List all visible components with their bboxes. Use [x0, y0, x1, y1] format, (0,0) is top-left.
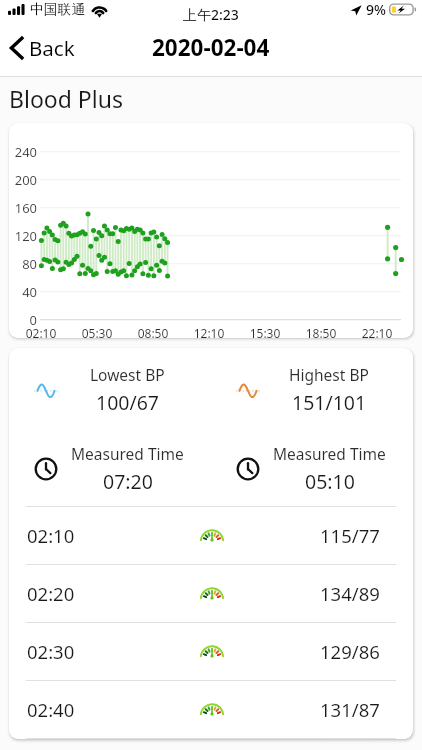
staticText: Back — [29, 34, 75, 62]
staticText: 中国联通 — [30, 1, 86, 18]
button[interactable]: Measured Time — [211, 443, 413, 495]
staticText: Lowest BP — [90, 364, 165, 385]
staticText: 02:20 — [27, 581, 75, 606]
staticText: 120 — [9, 227, 37, 245]
staticText: Measured Time — [71, 443, 184, 464]
staticText: 115/77 — [320, 523, 380, 548]
staticText: 05:30 — [75, 325, 119, 338]
staticText: 9% — [366, 0, 386, 19]
button[interactable]: 02:30 — [9, 623, 413, 680]
other: Blood pressure level — [199, 525, 225, 547]
staticText: 160 — [9, 199, 37, 217]
button[interactable]: 02:40 — [9, 681, 413, 738]
staticText: 上午2:23 — [183, 5, 239, 24]
staticText: 08:50 — [131, 325, 175, 338]
staticText: 22:10 — [355, 325, 399, 338]
staticText: 200 — [9, 171, 37, 189]
staticText: 0 — [9, 311, 37, 329]
staticText: 129/86 — [320, 639, 380, 664]
staticText: 100/67 — [96, 389, 160, 416]
button[interactable]: Back — [0, 28, 87, 68]
staticText: 05:10 — [305, 468, 355, 495]
staticText: 02:10 — [27, 523, 75, 548]
other: Blood pressure level — [199, 641, 225, 663]
staticText: Highest BP — [289, 364, 369, 385]
staticText: 02:10 — [19, 325, 63, 338]
staticText: 40 — [9, 283, 37, 301]
button[interactable]: 02:10 — [9, 507, 413, 564]
staticText: 131/87 — [320, 697, 380, 722]
staticText: 134/89 — [320, 581, 380, 606]
staticText: 15:30 — [243, 325, 287, 338]
staticText: 12:10 — [187, 325, 231, 338]
other: Back — [10, 36, 24, 60]
button[interactable]: Lowest BP — [9, 364, 211, 416]
button[interactable]: 02:20 — [9, 565, 413, 622]
staticText: 240 — [9, 143, 37, 161]
button[interactable]: Highest BP — [211, 364, 413, 416]
staticText: 02:30 — [27, 639, 75, 664]
staticText: 18:50 — [299, 325, 343, 338]
button[interactable]: Measured Time — [9, 443, 211, 495]
staticText: 07:20 — [103, 468, 153, 495]
other: Blood pressure level — [199, 699, 225, 721]
staticText: 151/101 — [292, 389, 367, 416]
staticText: Measured Time — [273, 443, 386, 464]
staticText: 80 — [9, 255, 37, 273]
other: Blood pressure level — [199, 583, 225, 605]
staticText: 02:40 — [27, 697, 75, 722]
staticText: 2020-02-04 — [152, 32, 270, 63]
staticText: Blood Plus — [9, 83, 123, 114]
